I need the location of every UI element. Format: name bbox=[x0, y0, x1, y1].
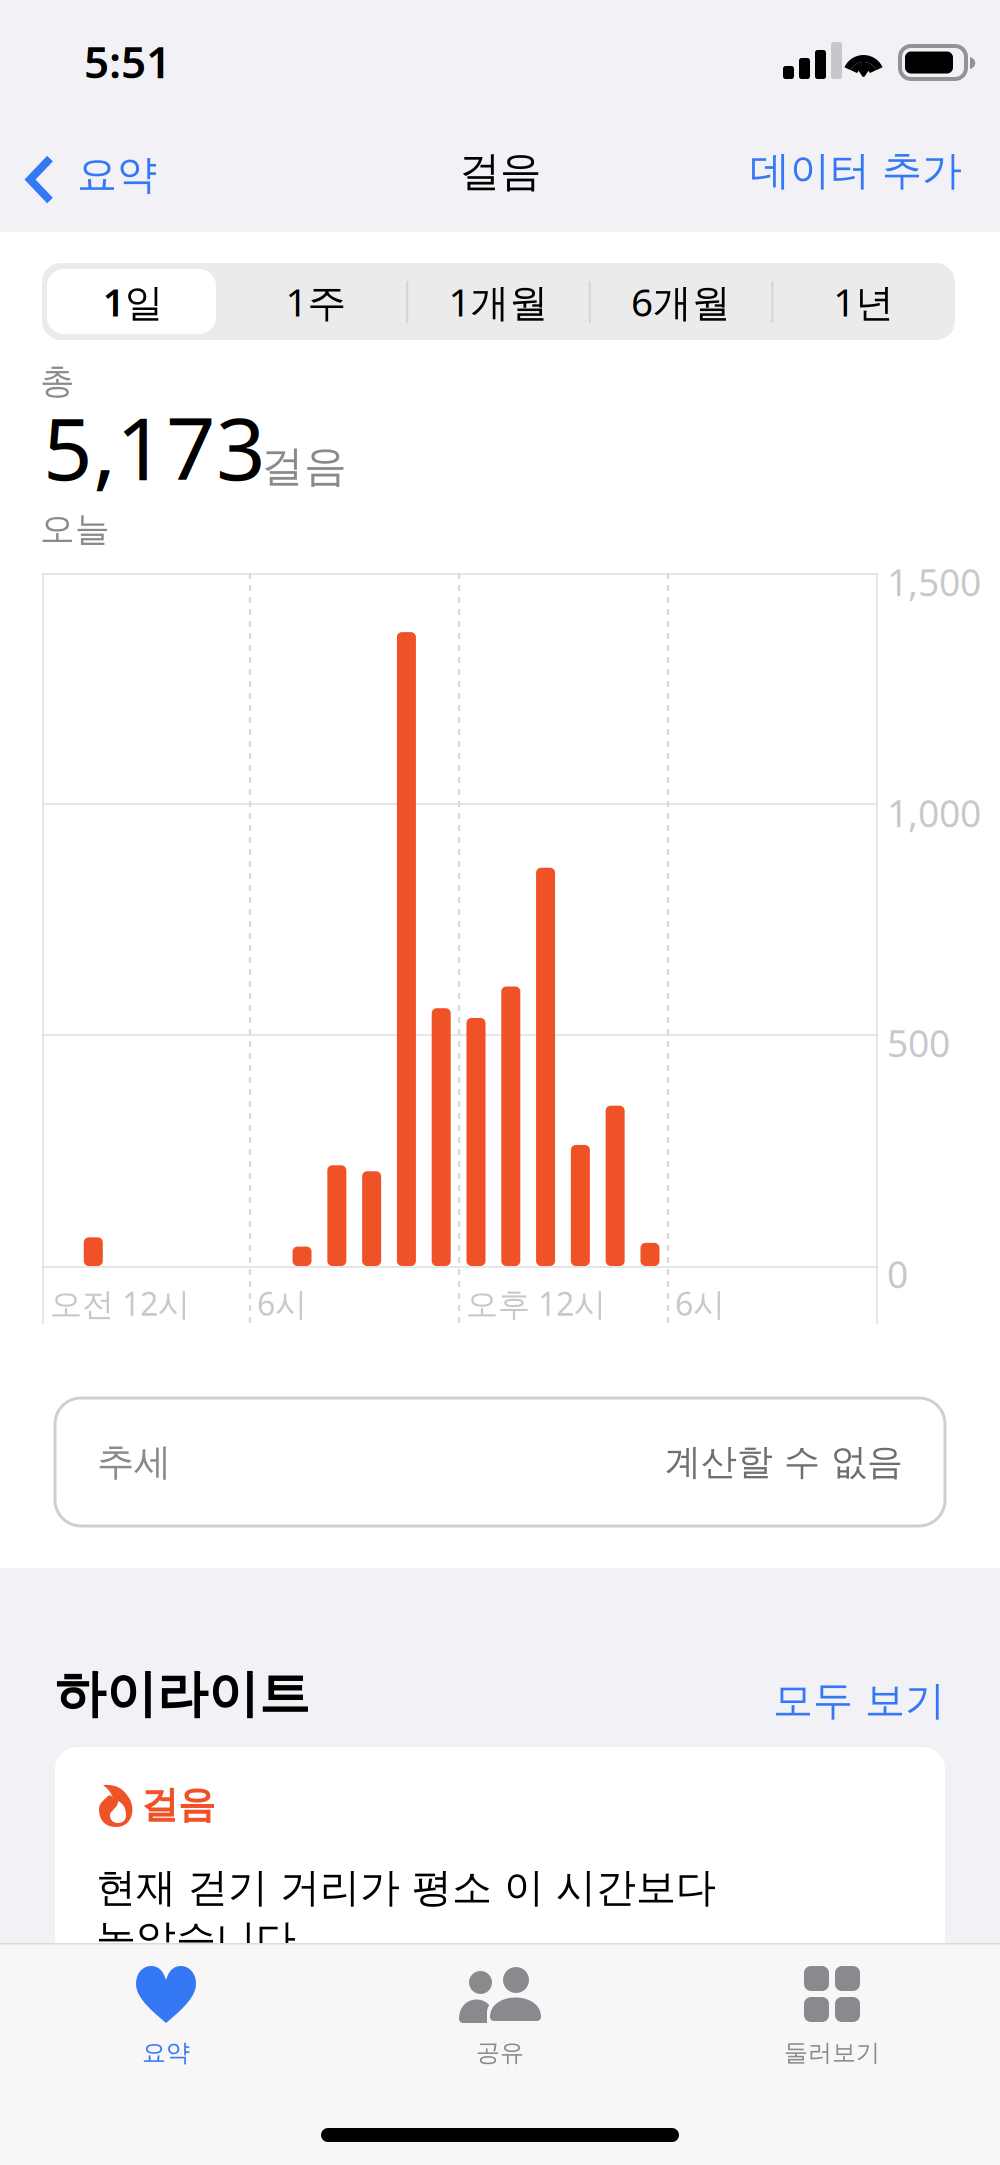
staticText: 오후 12시 bbox=[466, 1282, 606, 1324]
staticText: 총 bbox=[40, 360, 75, 403]
staticText: 요약 bbox=[77, 150, 157, 199]
staticText: 0 bbox=[887, 1249, 908, 1299]
staticText: 계산할 수 없음 bbox=[665, 1440, 903, 1484]
staticText: 둘러보기 bbox=[784, 2038, 880, 2067]
staticText: 오늘 bbox=[40, 508, 110, 551]
button[interactable]: 둘러보기 bbox=[666, 1943, 1000, 2083]
staticText: 1년 bbox=[833, 276, 894, 327]
staticText: 1개월 bbox=[448, 276, 548, 327]
staticText: 6시 bbox=[675, 1282, 725, 1324]
button[interactable]: 1일 bbox=[42, 263, 225, 340]
staticText: 500 bbox=[887, 1018, 950, 1068]
button[interactable]: 추세 bbox=[55, 1398, 945, 1526]
staticText: 6시 bbox=[257, 1282, 307, 1324]
button[interactable]: 1주 bbox=[225, 263, 407, 340]
button[interactable]: 공유 bbox=[333, 1943, 666, 2083]
staticText: 1,500 bbox=[887, 557, 981, 607]
staticText: 1일 bbox=[103, 276, 164, 327]
staticText: 하이라이트 bbox=[55, 1663, 310, 1725]
staticText: 요약 bbox=[142, 2038, 190, 2067]
staticText: 걸음 bbox=[261, 440, 347, 492]
button[interactable]: 데이터 추가 bbox=[740, 136, 972, 205]
staticText: 1,000 bbox=[887, 788, 981, 838]
staticText: 공유 bbox=[476, 2038, 524, 2067]
staticText: 5:51 bbox=[84, 32, 171, 90]
button[interactable]: 요약 bbox=[0, 1943, 333, 2083]
staticText: 걸음 bbox=[459, 146, 541, 197]
staticText: 5,173 bbox=[43, 389, 266, 504]
staticText: 모두 보기 bbox=[773, 1676, 945, 1725]
staticText: 데이터 추가 bbox=[750, 146, 962, 195]
button[interactable]: 6개월 bbox=[590, 263, 772, 340]
button[interactable]: 1개월 bbox=[407, 263, 590, 340]
button[interactable]: 1년 bbox=[772, 263, 955, 340]
staticText: 추세 bbox=[97, 1439, 171, 1485]
button[interactable]: 모두 보기 bbox=[700, 1676, 945, 1725]
staticText: 1주 bbox=[285, 276, 346, 327]
staticText: 6개월 bbox=[631, 276, 731, 327]
button[interactable]: 요약 bbox=[17, 142, 165, 217]
staticText: 현재 걷기 거리가 평소 이 시간보다 bbox=[96, 1863, 716, 1912]
staticText: 오전 12시 bbox=[50, 1282, 190, 1324]
staticText: 높았습니다. bbox=[96, 1911, 307, 1964]
staticText: 걸음 bbox=[141, 1782, 215, 1828]
